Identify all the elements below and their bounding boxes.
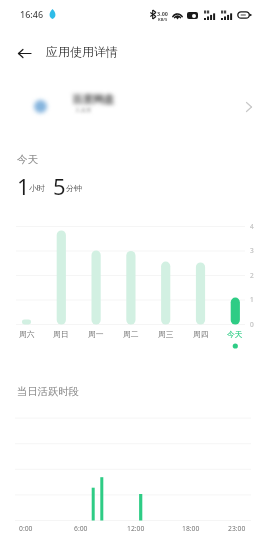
staticText: 周四 (193, 329, 209, 339)
staticText: 4 (250, 222, 254, 231)
staticText: 3 (250, 246, 254, 255)
staticText: 周一 (88, 329, 104, 339)
staticText: 3.00 (157, 10, 168, 17)
staticText: 18:00 (182, 524, 200, 533)
staticText: 23:00 (228, 524, 246, 533)
staticText: 0:00 (19, 524, 33, 533)
staticText: 小时 (29, 183, 45, 193)
staticText: 0 (250, 320, 254, 329)
staticText: 分钟 (66, 183, 82, 193)
staticText: 1 (250, 295, 254, 304)
staticText: 工具类 (75, 107, 92, 114)
staticText: 2 (250, 271, 254, 280)
staticText: 1 (17, 171, 30, 201)
staticText: 周二 (123, 329, 139, 339)
staticText: 周三 (158, 329, 174, 339)
staticText: 6:00 (74, 524, 88, 533)
staticText: 今天 (17, 153, 38, 166)
button[interactable]: Back (11, 40, 37, 66)
staticText: 16:46 (20, 8, 44, 20)
staticText: 当日活跃时段 (17, 385, 79, 398)
staticText: KB/S (158, 17, 168, 22)
staticText: 周六 (19, 329, 35, 339)
staticText: 12:00 (127, 524, 145, 533)
staticText: 今天 (227, 329, 243, 339)
staticText: 周日 (53, 329, 69, 339)
button[interactable]: 百度网盘 (0, 86, 263, 128)
staticText: 应用使用详情 (46, 44, 118, 59)
staticText: 百度网盘 (72, 93, 114, 106)
staticText: 5 (53, 171, 66, 201)
